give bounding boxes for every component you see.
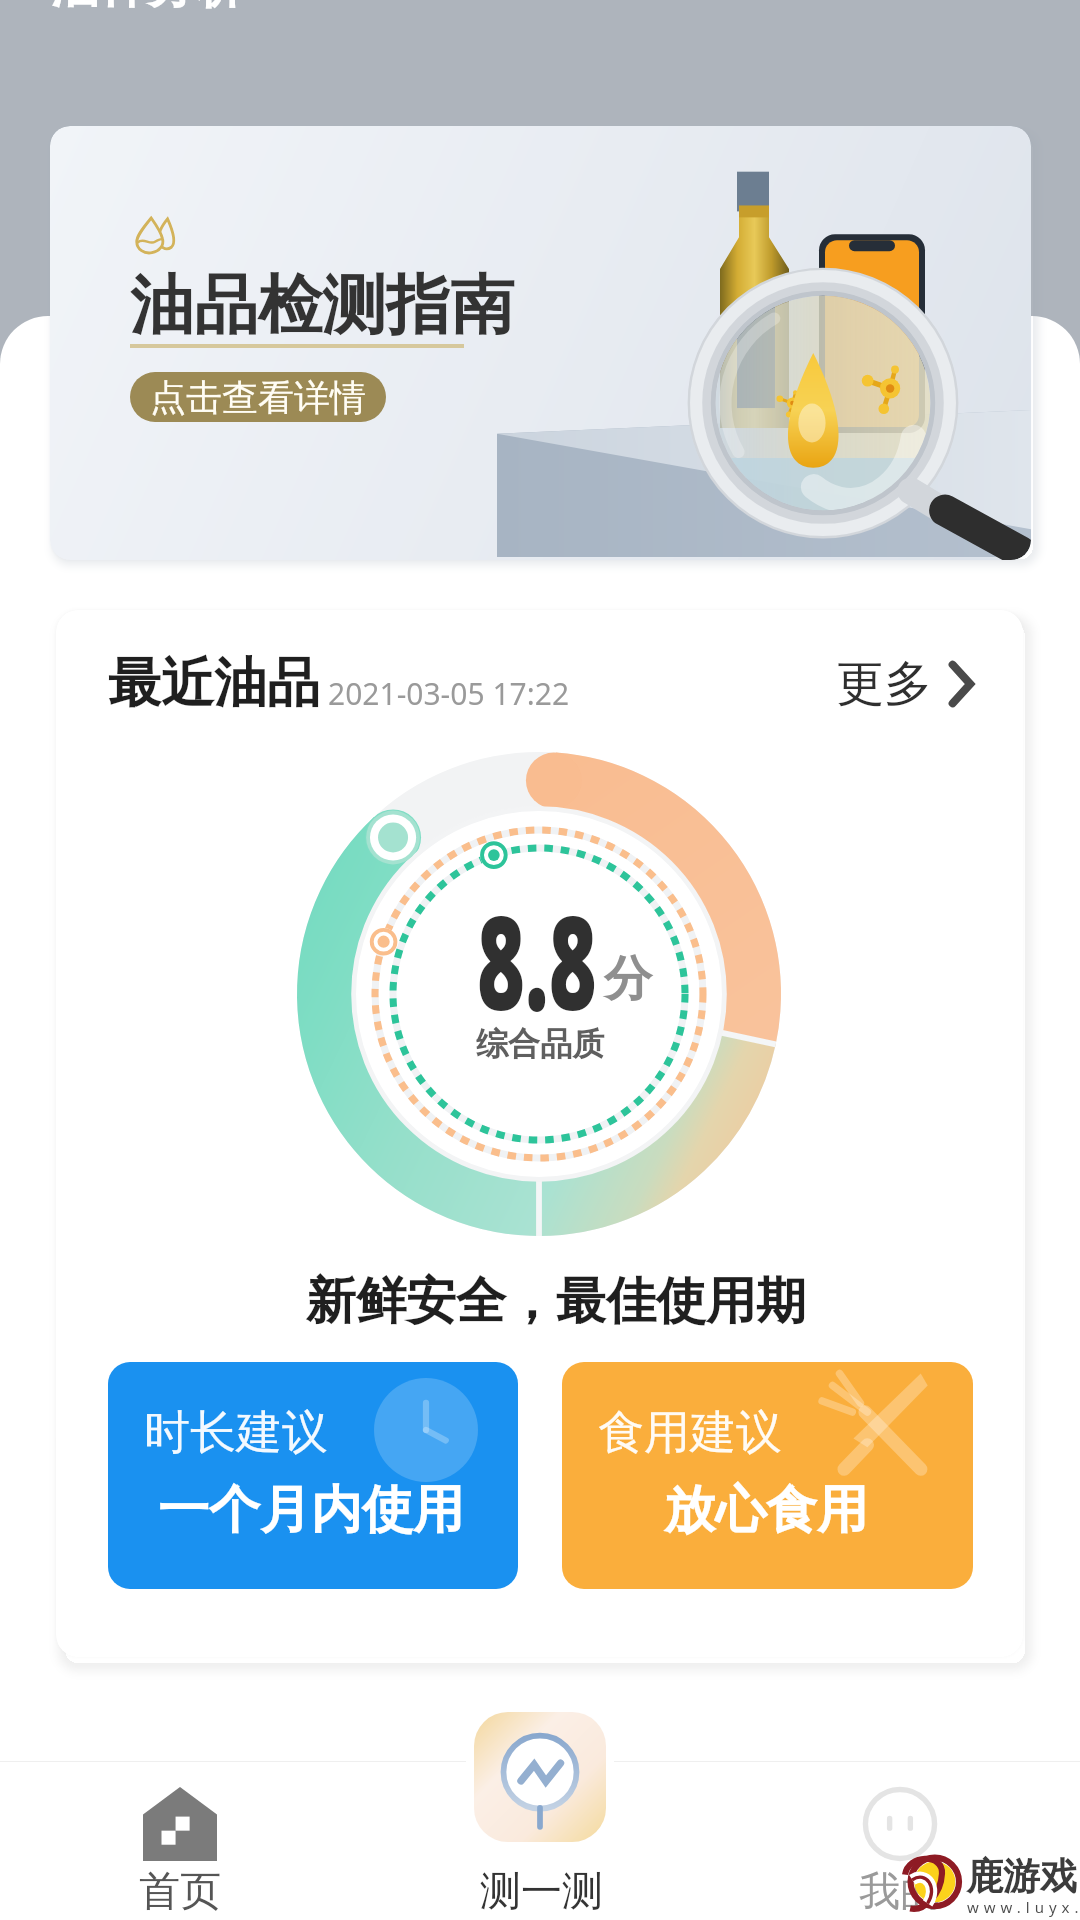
staticText: 新鲜安全，最佳使用期 <box>306 1270 806 1333</box>
staticText: 我的 <box>859 1866 941 1918</box>
staticText: 时长建议 <box>144 1404 328 1462</box>
staticText: 综合品质 <box>476 1024 604 1064</box>
staticText: 一个月内使用 <box>158 1478 464 1542</box>
button[interactable]: 我的 <box>756 1700 1044 1920</box>
staticText: 油品检测指南 <box>130 265 514 346</box>
staticText: 首页 <box>139 1866 221 1918</box>
staticText: 放心食用 <box>664 1478 868 1542</box>
staticText: 分 <box>604 949 652 1009</box>
button[interactable]: 测一测 <box>396 1700 684 1920</box>
button[interactable]: 点击查看详情 <box>130 372 386 422</box>
staticText: 油样分析 <box>51 0 243 16</box>
staticText: 最近油品 <box>108 650 320 717</box>
staticText: 8.8 <box>477 871 597 1048</box>
staticText: 食用建议 <box>598 1404 782 1462</box>
staticText: 更多 <box>836 654 932 714</box>
button[interactable]: 时长建议 <box>108 1362 518 1589</box>
button[interactable]: 首页 <box>36 1700 324 1920</box>
staticText: 点击查看详情 <box>150 375 366 420</box>
button[interactable]: 食用建议 <box>562 1362 973 1589</box>
button[interactable]: 油品检测指南 banner <box>50 126 1031 560</box>
staticText: 测一测 <box>480 1866 603 1918</box>
staticText: 2021-03-05 17:22 <box>328 673 570 714</box>
button[interactable]: 更多 <box>836 654 976 714</box>
staticText: www.luyx.cn <box>967 1897 1080 1917</box>
staticText: 鹿游戏 <box>966 1853 1077 1900</box>
